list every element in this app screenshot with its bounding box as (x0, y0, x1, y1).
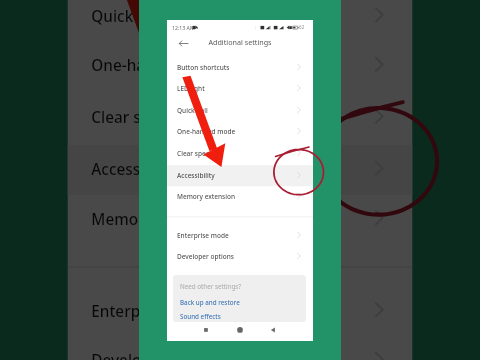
button[interactable]: Button shortcuts (167, 56, 313, 78)
button[interactable]: Accessibility (68, 142, 412, 194)
button[interactable]: Back (265, 324, 281, 340)
staticText: 12:13 AM (172, 24, 195, 31)
button[interactable]: One-handed mode (68, 38, 412, 90)
button[interactable]: Memory extension (68, 192, 412, 244)
button[interactable]: Clear speech (167, 142, 313, 164)
staticText: Sound effects (180, 312, 221, 321)
button[interactable]: Memory extension (167, 185, 313, 207)
staticText: LED light (177, 84, 205, 93)
staticText: Back up and restore (180, 298, 240, 307)
button[interactable]: One-handed mode (167, 120, 313, 142)
button[interactable]: LED light (167, 77, 313, 99)
staticText: Enterprise mode (91, 300, 214, 322)
button[interactable]: Back up and restore (173, 294, 306, 308)
button[interactable]: Recents (198, 324, 214, 340)
button[interactable]: Developer options (167, 245, 313, 267)
button[interactable]: Developer options (68, 333, 412, 360)
staticText: Clear speech (177, 149, 217, 158)
staticText: Memory extension (91, 208, 230, 229)
staticText: 62 (299, 24, 305, 30)
staticText: Button shortcuts (177, 63, 230, 72)
staticText: Accessibility (91, 159, 181, 180)
button[interactable]: Sound effects (173, 308, 306, 322)
staticText: Additional settings (167, 37, 313, 47)
staticText: One-handed mode (91, 55, 230, 76)
button[interactable]: Enterprise mode (167, 224, 313, 246)
staticText: Quick ball (177, 106, 208, 115)
staticText: Quick ball (91, 5, 164, 27)
staticText: Developer options (91, 350, 226, 360)
staticText: Need other settings? (180, 282, 241, 291)
button[interactable]: Quick ball (68, 0, 412, 41)
staticText: Enterprise mode (177, 231, 229, 240)
staticText: Accessibility (177, 171, 215, 180)
staticText: Developer options (177, 252, 234, 261)
button[interactable]: Back (177, 37, 190, 50)
staticText: One-handed mode (177, 127, 236, 136)
button[interactable]: Clear speech (68, 90, 412, 142)
button[interactable]: Enterprise mode (68, 284, 412, 336)
staticText: Clear speech (91, 107, 186, 128)
button[interactable]: Home (232, 324, 248, 340)
button[interactable]: Quick ball (167, 99, 313, 121)
staticText: Memory extension (177, 192, 236, 201)
button[interactable]: Accessibility (167, 164, 313, 186)
